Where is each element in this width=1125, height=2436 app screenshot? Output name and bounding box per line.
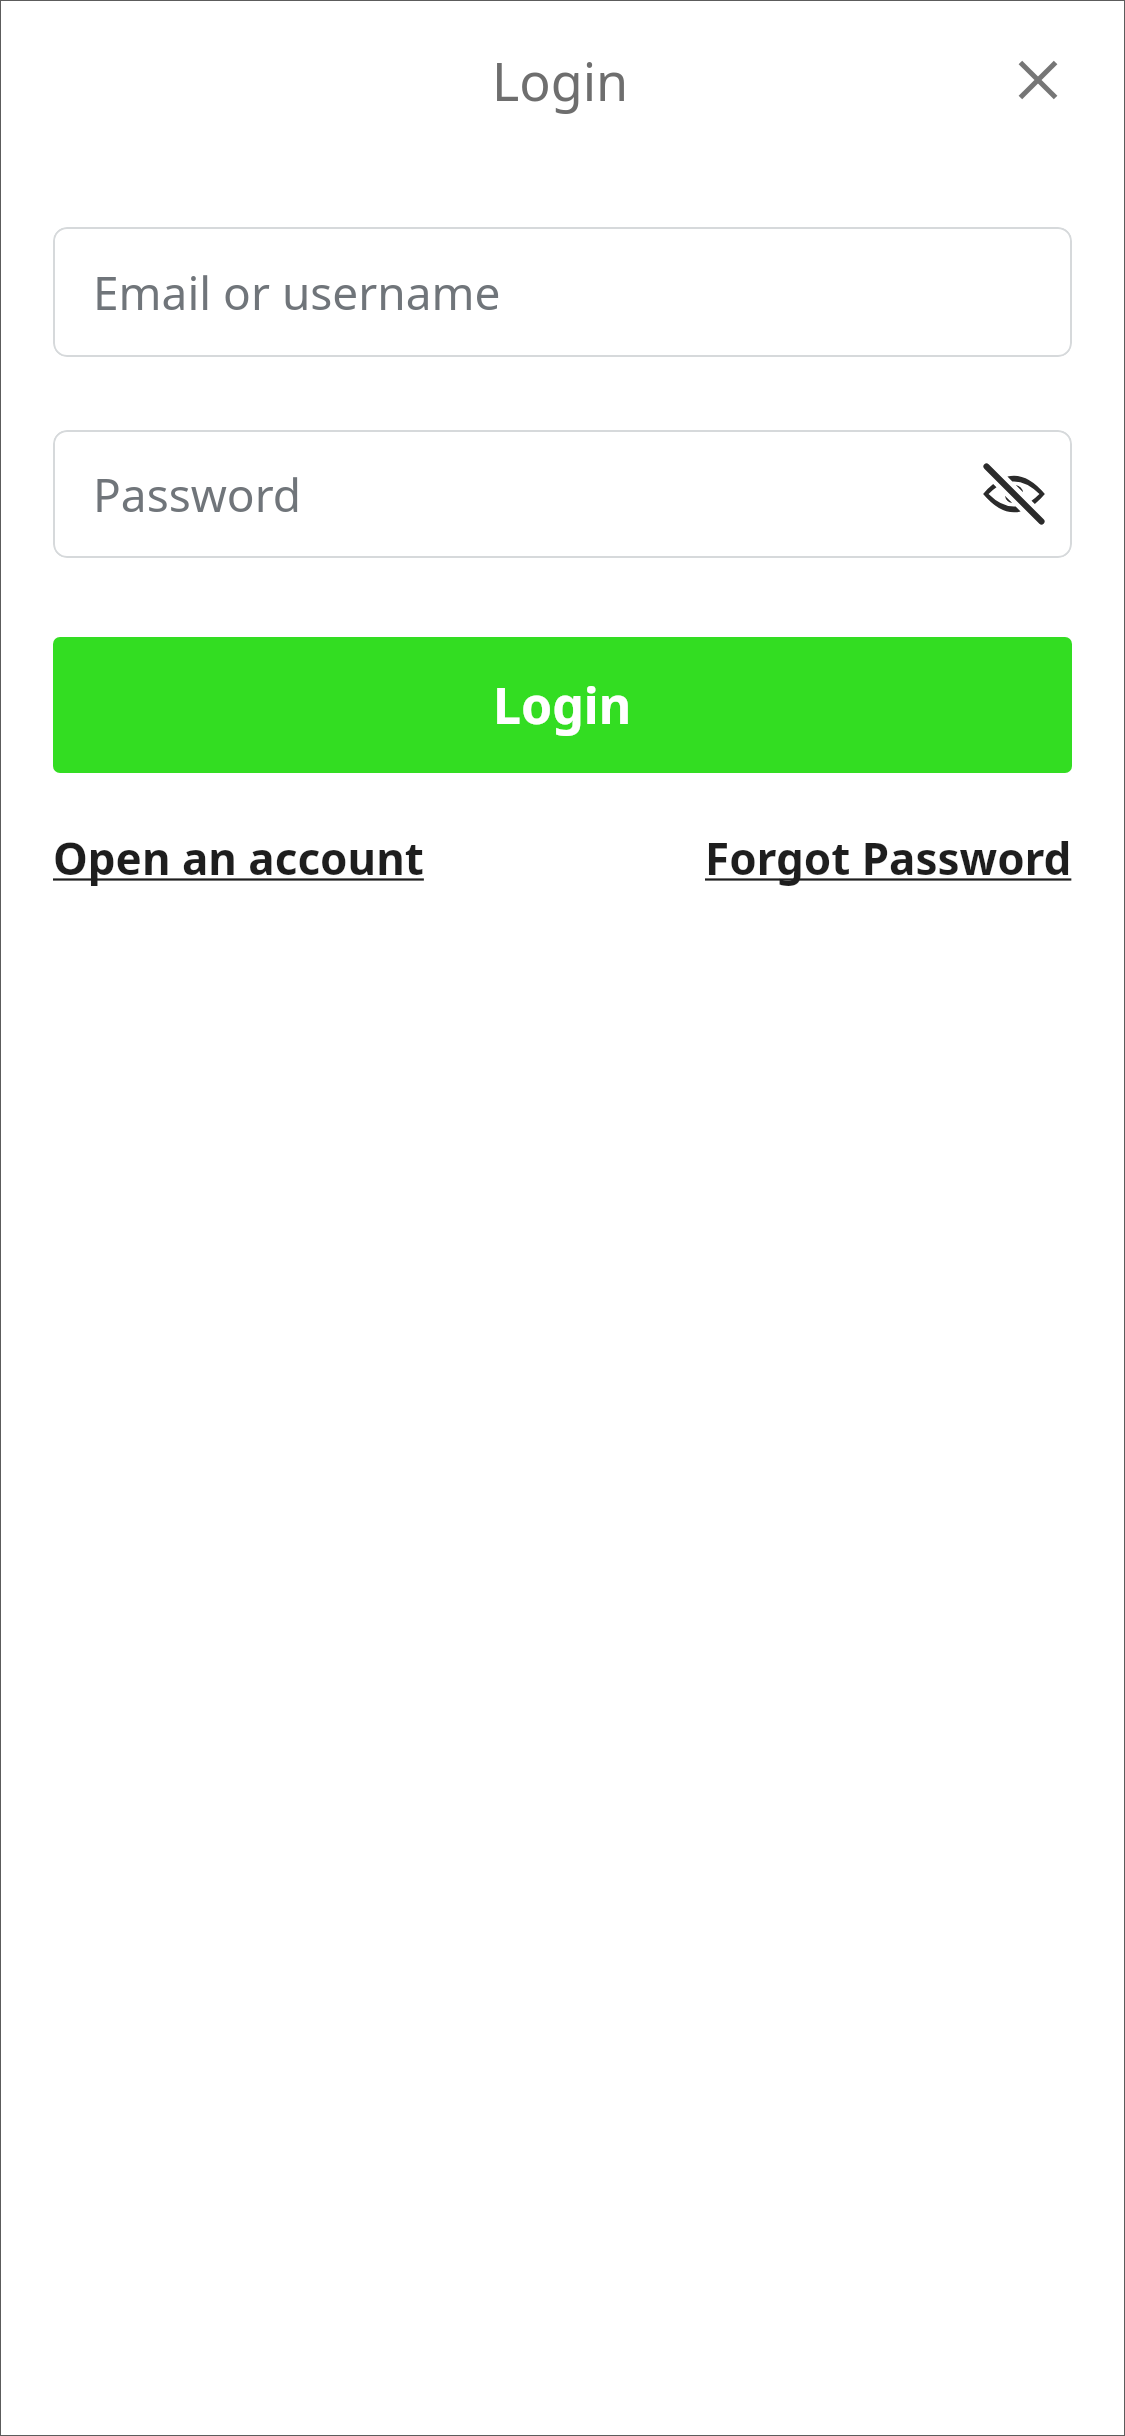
staticText: Open an account	[53, 828, 424, 888]
button[interactable]: Open an account	[53, 828, 424, 888]
staticText: Forgot Password	[705, 828, 1072, 888]
staticText: Password	[93, 463, 302, 526]
button[interactable]: Forgot Password	[705, 828, 1072, 888]
button[interactable]: Show password	[974, 454, 1054, 534]
button[interactable]: Email or username	[53, 227, 1072, 357]
button[interactable]: Close	[1005, 47, 1071, 113]
staticText: Login	[493, 671, 632, 739]
staticText: Login	[492, 45, 629, 116]
button[interactable]: Login	[53, 637, 1072, 773]
staticText: Email or username	[93, 261, 501, 324]
button[interactable]: Password	[53, 430, 1072, 558]
